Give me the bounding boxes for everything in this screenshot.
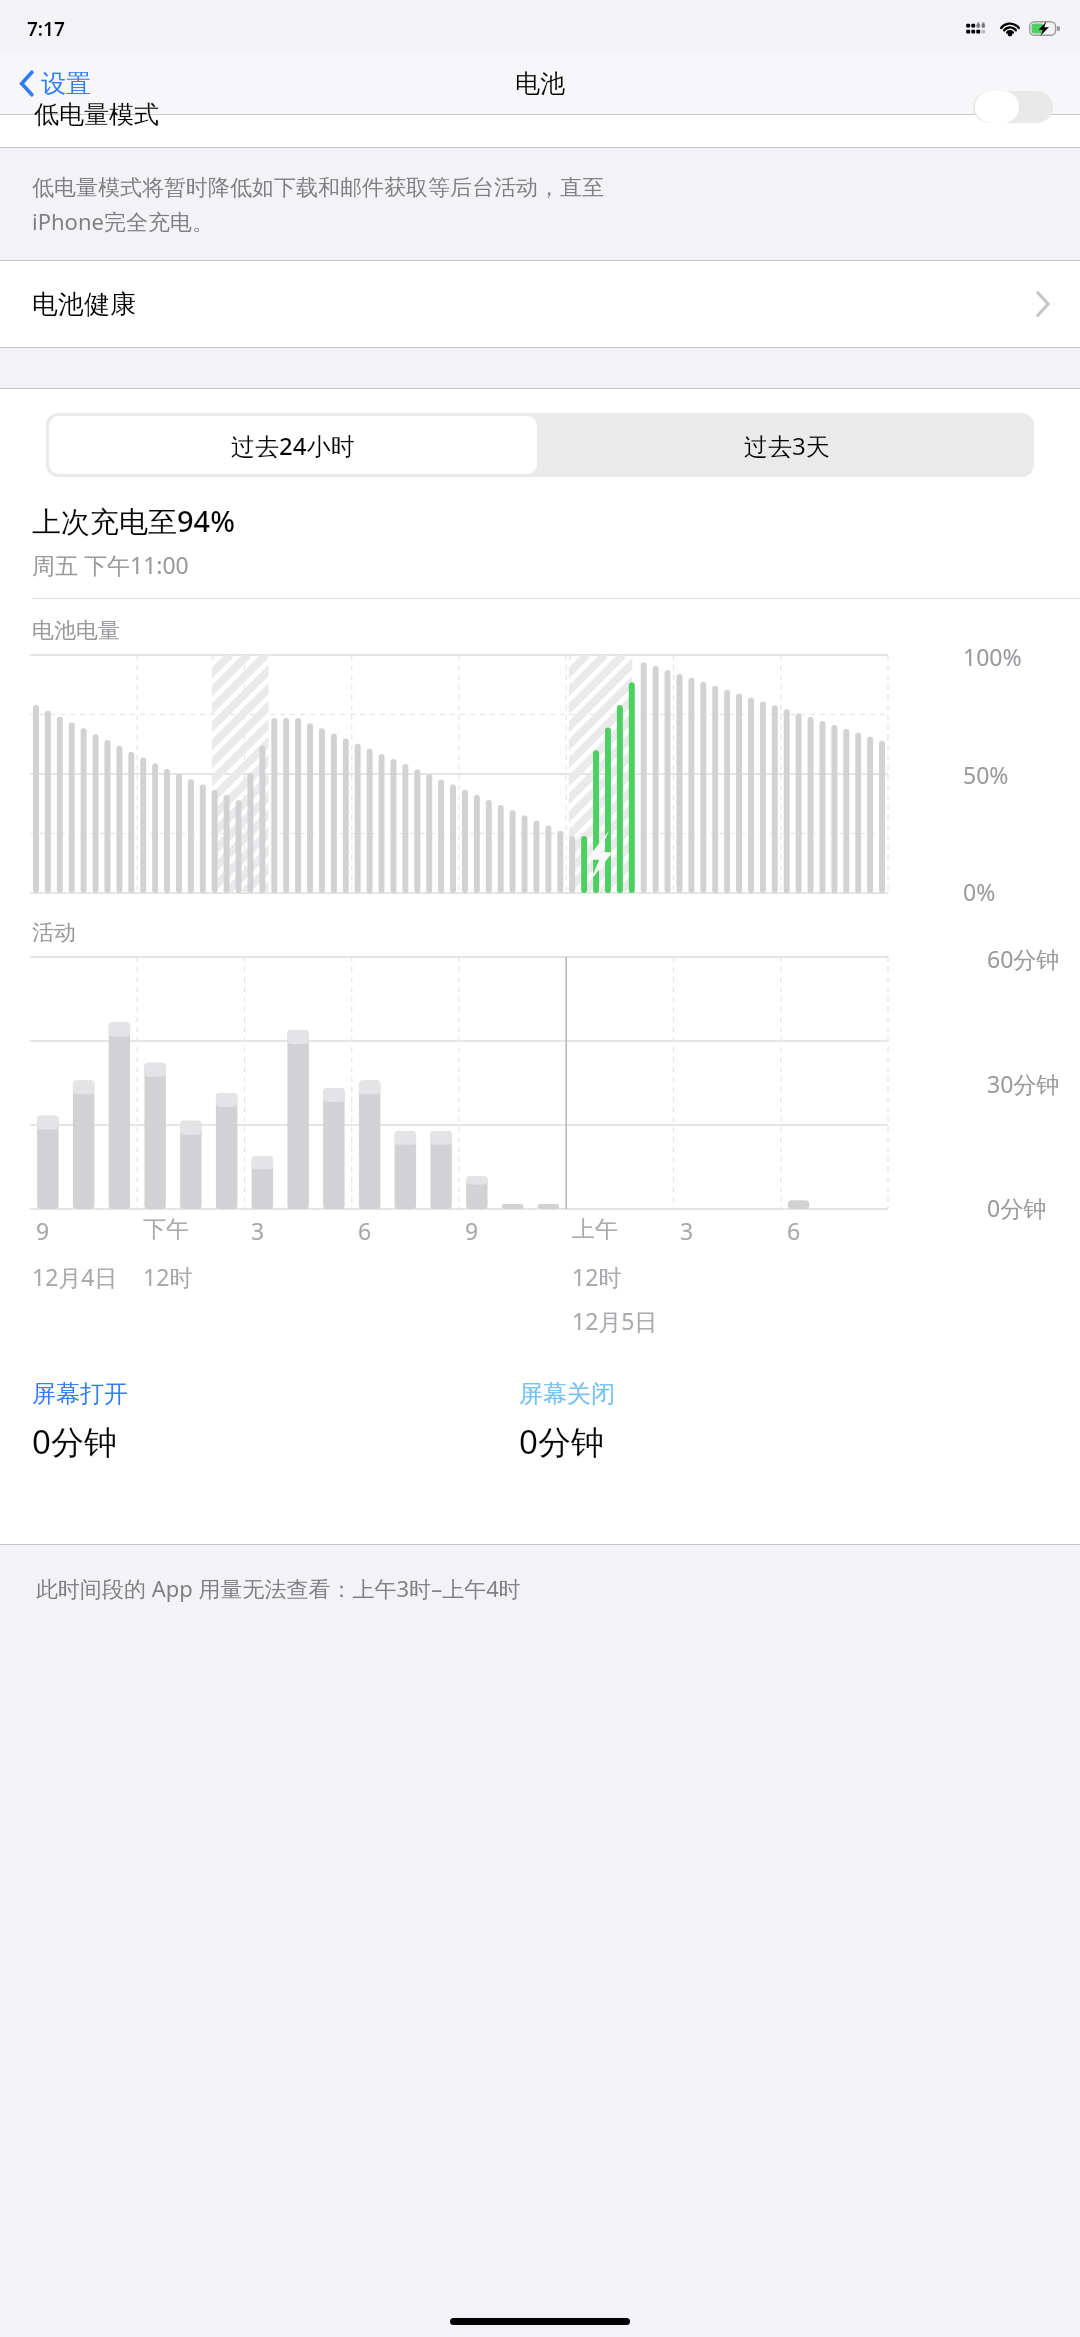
staticText: 低电量模式将暂时降低如下载和邮件获取等后台活动，直至 iPhone完全充电。 (32, 174, 1060, 236)
staticText: 过去3天 (744, 429, 830, 462)
staticText: 0分钟 (32, 1419, 117, 1464)
staticText: 12月5日 (572, 1305, 658, 1336)
staticText: 9 (36, 1215, 50, 1246)
staticText: 0分钟 (519, 1419, 604, 1464)
button[interactable]: 低电量模式开关 (973, 91, 1053, 123)
staticText: 7:17 (27, 16, 65, 42)
staticText: 过去24小时 (231, 429, 355, 462)
staticText: 60分钟 (987, 943, 1060, 974)
staticText: 0% (963, 876, 996, 907)
button[interactable]: 电池健康 (0, 261, 1080, 347)
staticText: 此时间段的 App 用量无法查看：上午3时–上午4时 (36, 1573, 521, 1603)
staticText: 下午 (143, 1215, 189, 1244)
button[interactable]: 过去3天 (540, 413, 1034, 477)
staticText: 3 (680, 1215, 694, 1246)
staticText: 电池电量 (32, 617, 120, 645)
staticText: 屏幕关闭 (519, 1379, 615, 1409)
staticText: 50% (963, 759, 1009, 790)
button[interactable]: 过去24小时 (49, 416, 537, 474)
staticText: 100% (963, 641, 1022, 672)
staticText: 上午 (572, 1215, 618, 1244)
staticText: 6 (787, 1215, 801, 1246)
staticText: 12时 (143, 1261, 193, 1292)
staticText: 设置 (41, 68, 91, 99)
staticText: 12时 (572, 1261, 622, 1292)
staticText: 电池健康 (32, 288, 1035, 321)
staticText: 低电量模式 (34, 99, 159, 130)
staticText: 电池 (515, 68, 565, 99)
staticText: 屏幕打开 (32, 1379, 128, 1409)
staticText: 上次充电至94% (32, 501, 235, 541)
staticText: 0分钟 (987, 1192, 1047, 1223)
staticText: 12月4日 (32, 1261, 118, 1292)
button[interactable]: 设置 (12, 60, 99, 107)
staticText: 9 (465, 1215, 479, 1246)
staticText: 6 (358, 1215, 372, 1246)
staticText: 周五 下午11:00 (32, 549, 189, 580)
staticText: 活动 (32, 919, 76, 947)
staticText: 3 (251, 1215, 265, 1246)
staticText: 30分钟 (987, 1068, 1060, 1099)
